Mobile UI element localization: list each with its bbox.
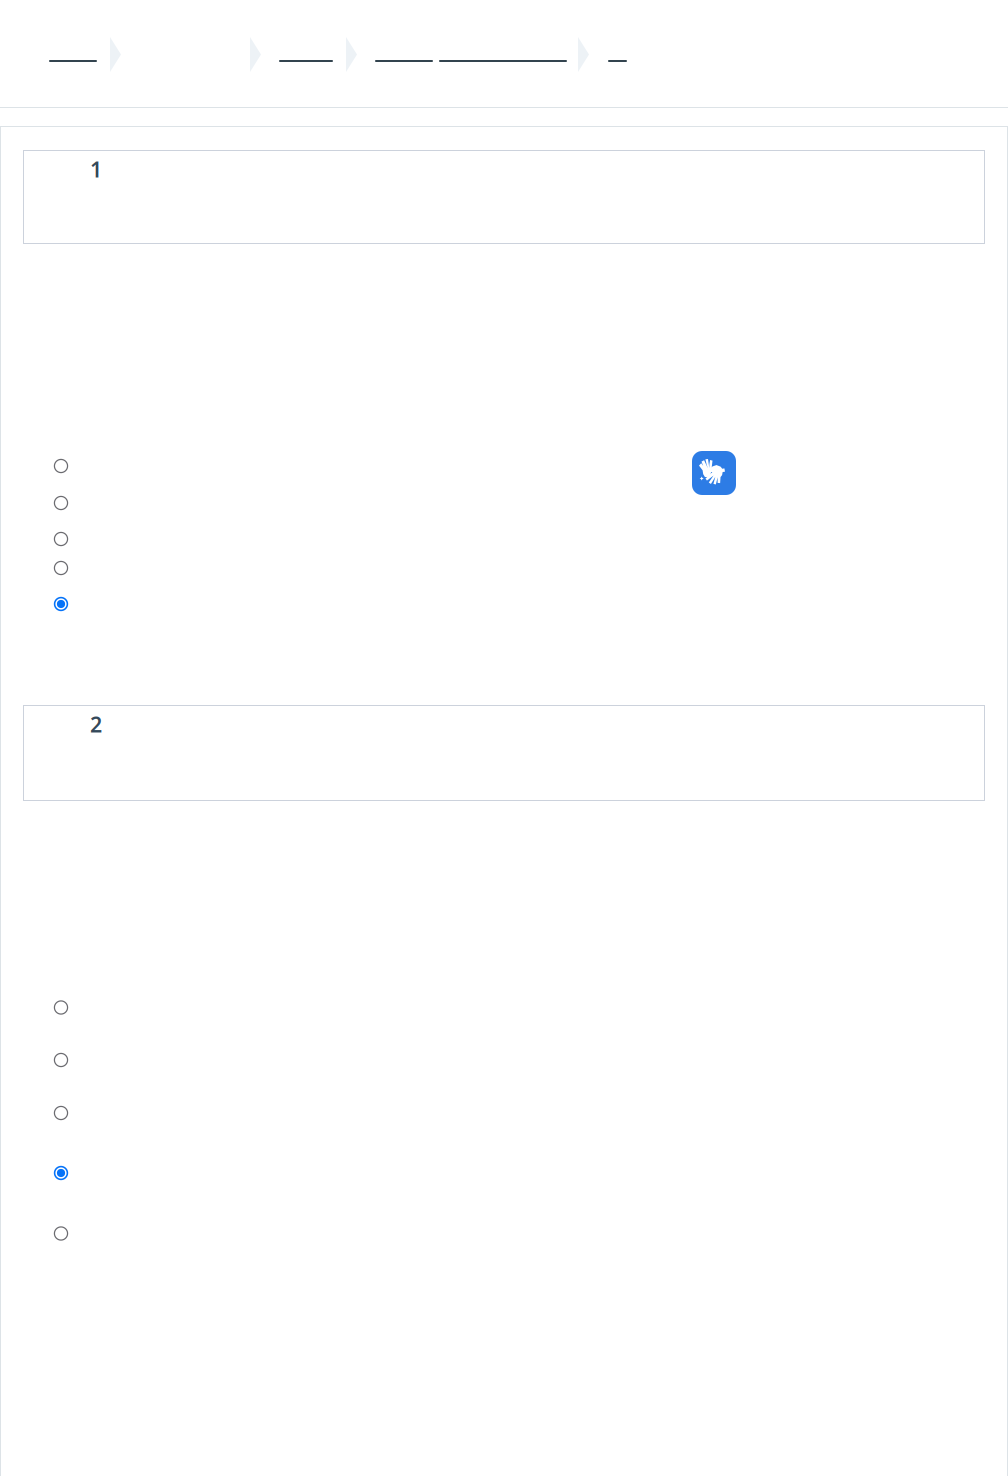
- staticText: 2: [90, 710, 102, 738]
- button[interactable]: Answer option 2: [39, 1042, 83, 1078]
- button[interactable]: Answer option 2: [39, 485, 83, 521]
- button[interactable]: Sign language interpretation: [692, 451, 736, 495]
- button[interactable]: Answer option 3: [39, 521, 83, 557]
- button[interactable]: Answer option 5: [39, 586, 83, 622]
- button[interactable]: Answer option 1: [39, 448, 83, 484]
- button[interactable]: Assignment: [367, 42, 575, 80]
- button[interactable]: Answer option 3: [39, 1095, 83, 1131]
- button[interactable]: Answer option 4: [39, 550, 83, 586]
- staticText: 1: [90, 155, 102, 183]
- button[interactable]: Answer option 1: [39, 989, 83, 1025]
- button[interactable]: Answer option 4: [39, 1155, 83, 1191]
- button[interactable]: Course: [271, 42, 341, 80]
- button[interactable]: Answer option 5: [39, 1215, 83, 1251]
- button[interactable]: Home: [41, 42, 105, 80]
